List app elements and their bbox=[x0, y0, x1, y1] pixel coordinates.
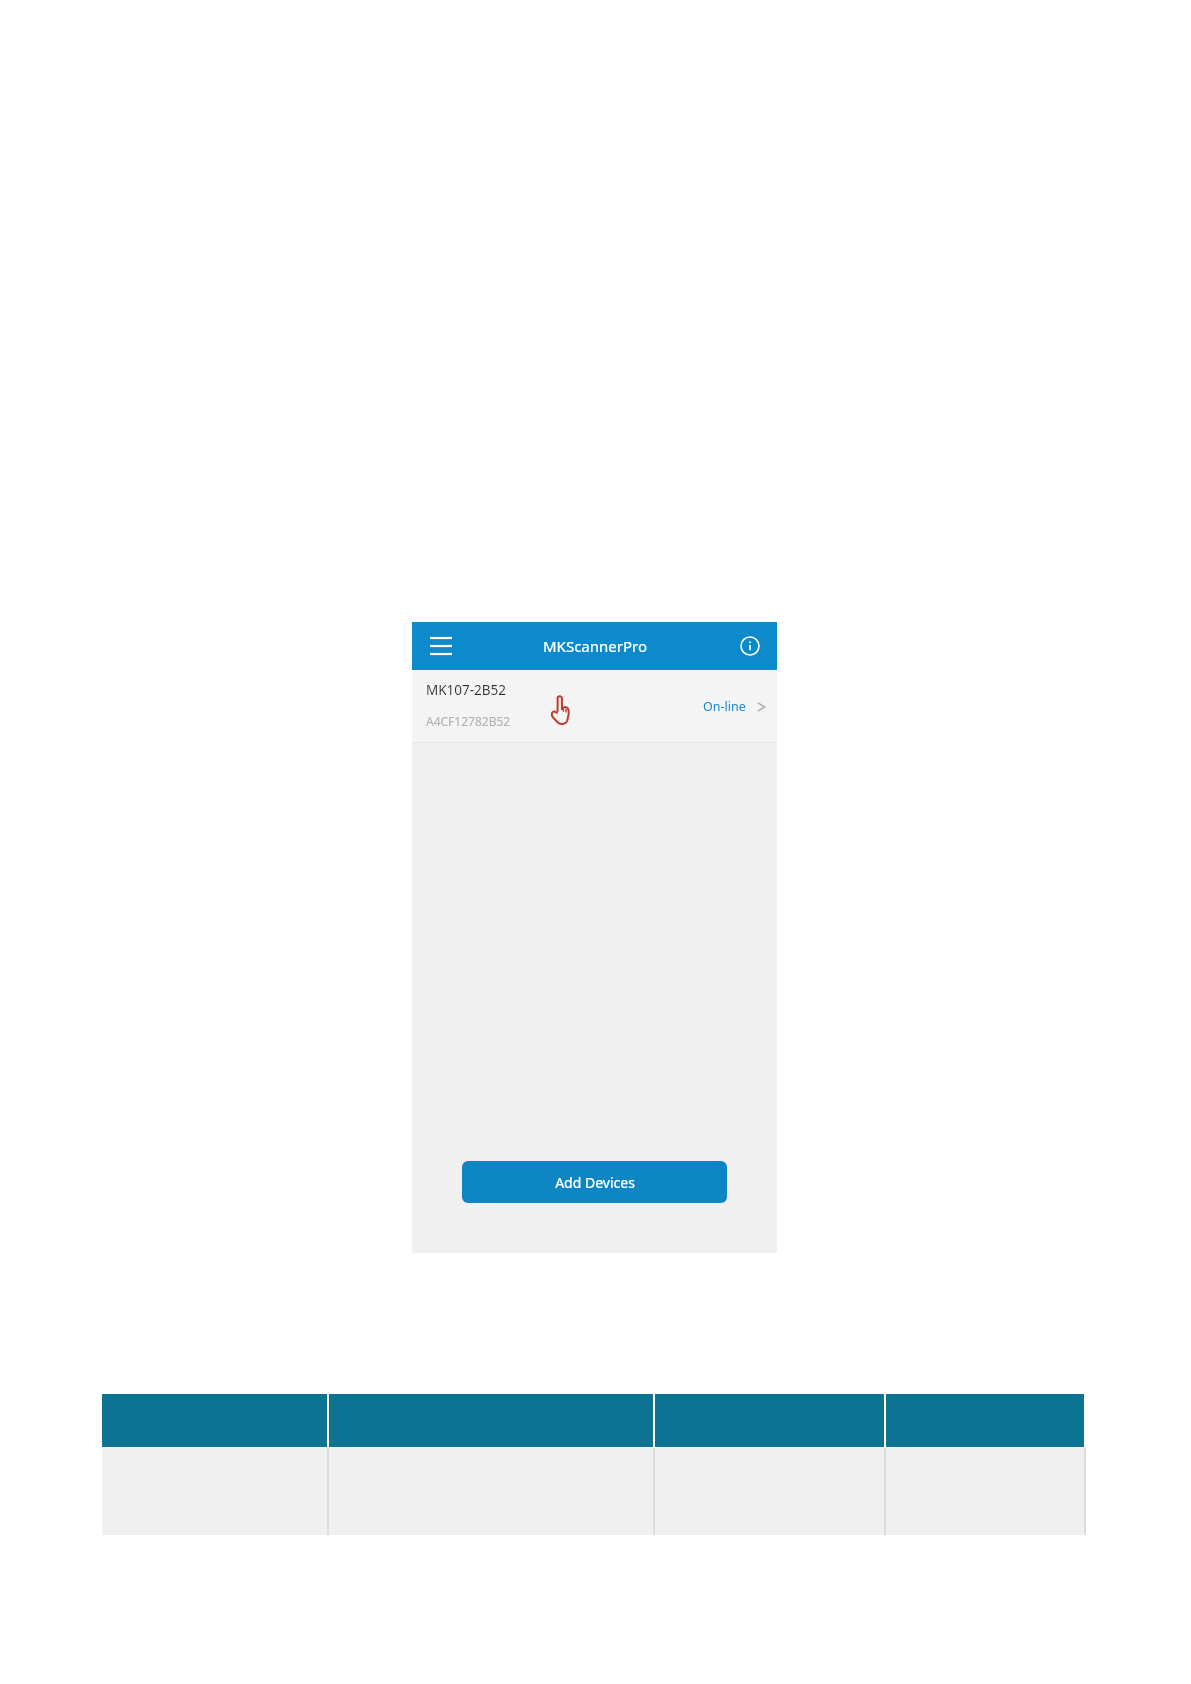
staticText: On-line bbox=[703, 698, 746, 715]
staticText: A4CF12782B52 bbox=[426, 713, 511, 729]
staticText: MKScannerPro bbox=[543, 636, 647, 656]
staticText: Add Devices bbox=[555, 1173, 635, 1192]
button[interactable]: Open navigation menu bbox=[424, 629, 458, 663]
button[interactable]: About / Information bbox=[735, 631, 765, 661]
staticText: MK107-2B52 bbox=[426, 681, 507, 699]
button[interactable]: Add Devices bbox=[462, 1161, 727, 1203]
button[interactable]: MK107-2B52 bbox=[412, 670, 777, 742]
